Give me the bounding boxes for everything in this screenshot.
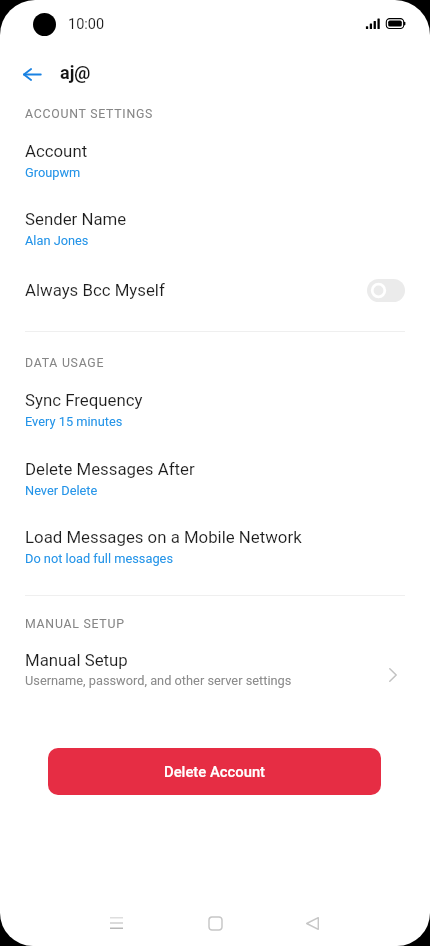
button[interactable]: Home: [191, 899, 239, 946]
staticText: Always Bcc Myself: [25, 280, 367, 300]
staticText: ACCOUNT SETTINGS: [25, 107, 154, 121]
button[interactable]: Manual Setup: [0, 649, 430, 705]
button[interactable]: Recent apps: [92, 899, 140, 946]
staticText: Sender Name: [25, 209, 127, 229]
staticText: Never Delete: [25, 483, 98, 498]
staticText: Username, password, and other server set…: [25, 673, 292, 688]
staticText: Load Messages on a Mobile Network: [25, 527, 302, 547]
staticText: Alan Jones: [25, 233, 89, 248]
staticText: 10:00: [68, 16, 105, 33]
staticText: Groupwm: [25, 165, 81, 180]
staticText: MANUAL SETUP: [25, 617, 125, 631]
button[interactable]: Back: [288, 899, 336, 946]
staticText: aj@: [60, 62, 91, 83]
button[interactable]: Delete Messages After: [0, 449, 430, 515]
button[interactable]: Account: [0, 131, 430, 197]
staticText: Delete Account: [164, 763, 266, 780]
button[interactable]: Sync Frequency: [0, 380, 430, 446]
staticText: Sync Frequency: [25, 390, 143, 410]
button[interactable]: Always Bcc Myself: [0, 267, 430, 313]
button[interactable]: Back: [12, 55, 52, 95]
staticText: Every 15 minutes: [25, 414, 123, 429]
button[interactable]: Delete Account: [48, 748, 381, 795]
staticText: Delete Messages After: [25, 459, 195, 479]
staticText: Manual Setup: [25, 650, 128, 670]
staticText: Account: [25, 141, 88, 161]
button[interactable]: Sender Name: [0, 199, 430, 265]
staticText: DATA USAGE: [25, 356, 105, 370]
staticText: Do not load full messages: [25, 551, 174, 566]
button[interactable]: Load Messages on a Mobile Network: [0, 517, 430, 583]
